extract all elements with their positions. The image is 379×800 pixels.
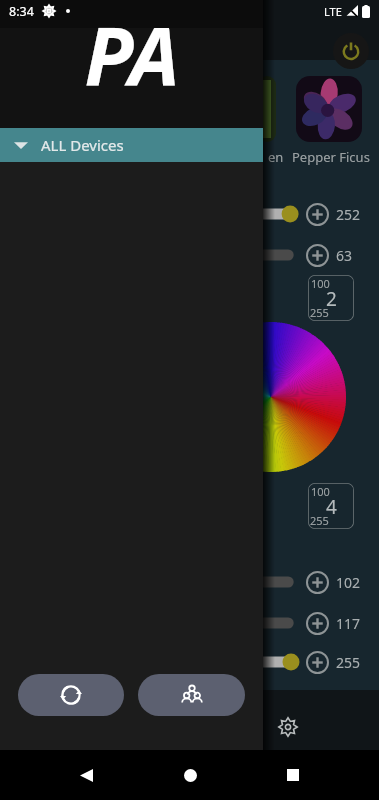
button[interactable]: Slider 252 bbox=[255, 201, 300, 227]
button[interactable]: 100 bbox=[308, 483, 354, 529]
staticText: 63 bbox=[336, 246, 353, 265]
button[interactable]: ALL Devices bbox=[0, 128, 263, 162]
button[interactable]: Increase 63 bbox=[306, 244, 329, 267]
button[interactable] bbox=[296, 76, 362, 142]
button[interactable]: Slider 63 bbox=[255, 242, 300, 268]
button[interactable]: Recents bbox=[276, 758, 310, 792]
button[interactable]: Home bbox=[173, 758, 207, 792]
staticText: 255 bbox=[310, 305, 329, 320]
button[interactable]: Groups bbox=[138, 674, 245, 716]
button[interactable]: Increase 255 bbox=[306, 651, 329, 674]
staticText: ALL Devices bbox=[41, 135, 124, 155]
button[interactable]: Slider 255 bbox=[255, 649, 300, 675]
staticText: 255 bbox=[310, 513, 329, 528]
staticText: 117 bbox=[336, 614, 361, 633]
staticText: PAL bbox=[68, 0, 196, 128]
button[interactable]: Sync bbox=[18, 674, 124, 716]
button[interactable]: Slider 117 bbox=[255, 610, 300, 636]
button[interactable]: Settings bbox=[274, 713, 302, 741]
staticText: 255 bbox=[336, 653, 361, 672]
button[interactable]: Slider 102 bbox=[255, 569, 300, 595]
button[interactable]: Increase 117 bbox=[306, 612, 329, 635]
staticText: 252 bbox=[336, 205, 361, 224]
staticText: 100 bbox=[311, 276, 330, 291]
button[interactable]: Back bbox=[69, 758, 103, 792]
staticText: 4 bbox=[326, 494, 337, 520]
button[interactable]: Power bbox=[333, 33, 369, 69]
button[interactable]: Increase 102 bbox=[306, 571, 329, 594]
staticText: 8:34 bbox=[9, 3, 34, 20]
staticText: 2 bbox=[326, 286, 337, 312]
staticText: 100 bbox=[311, 484, 330, 499]
staticText: en bbox=[268, 148, 284, 166]
staticText: LTE bbox=[324, 4, 342, 19]
staticText: 102 bbox=[336, 573, 361, 592]
button[interactable]: 100 bbox=[308, 275, 354, 321]
staticText: Pepper Ficus bbox=[292, 148, 370, 166]
button[interactable]: Increase 252 bbox=[306, 203, 329, 226]
